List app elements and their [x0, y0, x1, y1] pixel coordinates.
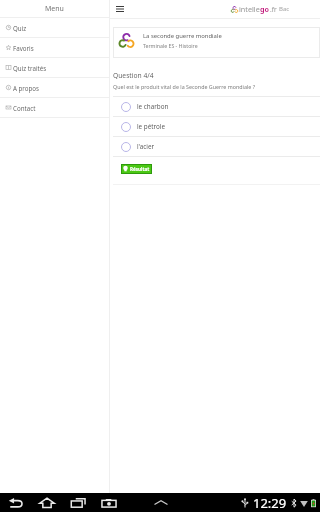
button[interactable]: Favoris [0, 38, 109, 57]
button[interactable]: Résultat [121, 164, 152, 174]
button[interactable]: Open menu [113, 2, 127, 16]
staticText: go [260, 4, 270, 14]
staticText: .fr [270, 5, 277, 14]
button[interactable]: Home [37, 493, 56, 512]
button[interactable]: Recent apps [68, 493, 87, 512]
button[interactable]: Contact [0, 98, 109, 117]
staticText: Contact [13, 104, 36, 112]
button[interactable]: le pétrole [113, 117, 320, 136]
button[interactable]: Quiz traités [0, 58, 109, 77]
button[interactable]: Back [6, 493, 25, 512]
staticText: La seconde guerre mondiale [143, 32, 222, 40]
button[interactable]: Show notifications [152, 494, 169, 511]
staticText: Quiz [13, 24, 27, 32]
staticText: Bac [279, 5, 290, 13]
staticText: le charbon [137, 102, 169, 111]
staticText: intelle [239, 4, 260, 14]
button[interactable]: A propos [0, 78, 109, 97]
staticText: Quiz traités [13, 64, 47, 72]
staticText: l'acier [137, 142, 155, 151]
staticText: A propos [13, 84, 40, 92]
staticText: Menu [45, 4, 64, 14]
button[interactable]: Screenshot [99, 493, 118, 512]
staticText: Question 4/4 [113, 71, 154, 80]
button[interactable]: Quiz [0, 18, 109, 37]
staticText: Terminale ES - Histoire [143, 42, 198, 49]
button[interactable]: le charbon [113, 97, 320, 116]
staticText: Résultat [130, 166, 150, 172]
staticText: Favoris [13, 44, 34, 52]
button[interactable]: La seconde guerre mondiale [113, 27, 320, 58]
staticText: Quel est le produit vital de la Seconde … [113, 83, 256, 90]
staticText: 12:29 [253, 494, 287, 512]
button[interactable]: l'acier [113, 137, 320, 156]
staticText: le pétrole [137, 122, 165, 131]
